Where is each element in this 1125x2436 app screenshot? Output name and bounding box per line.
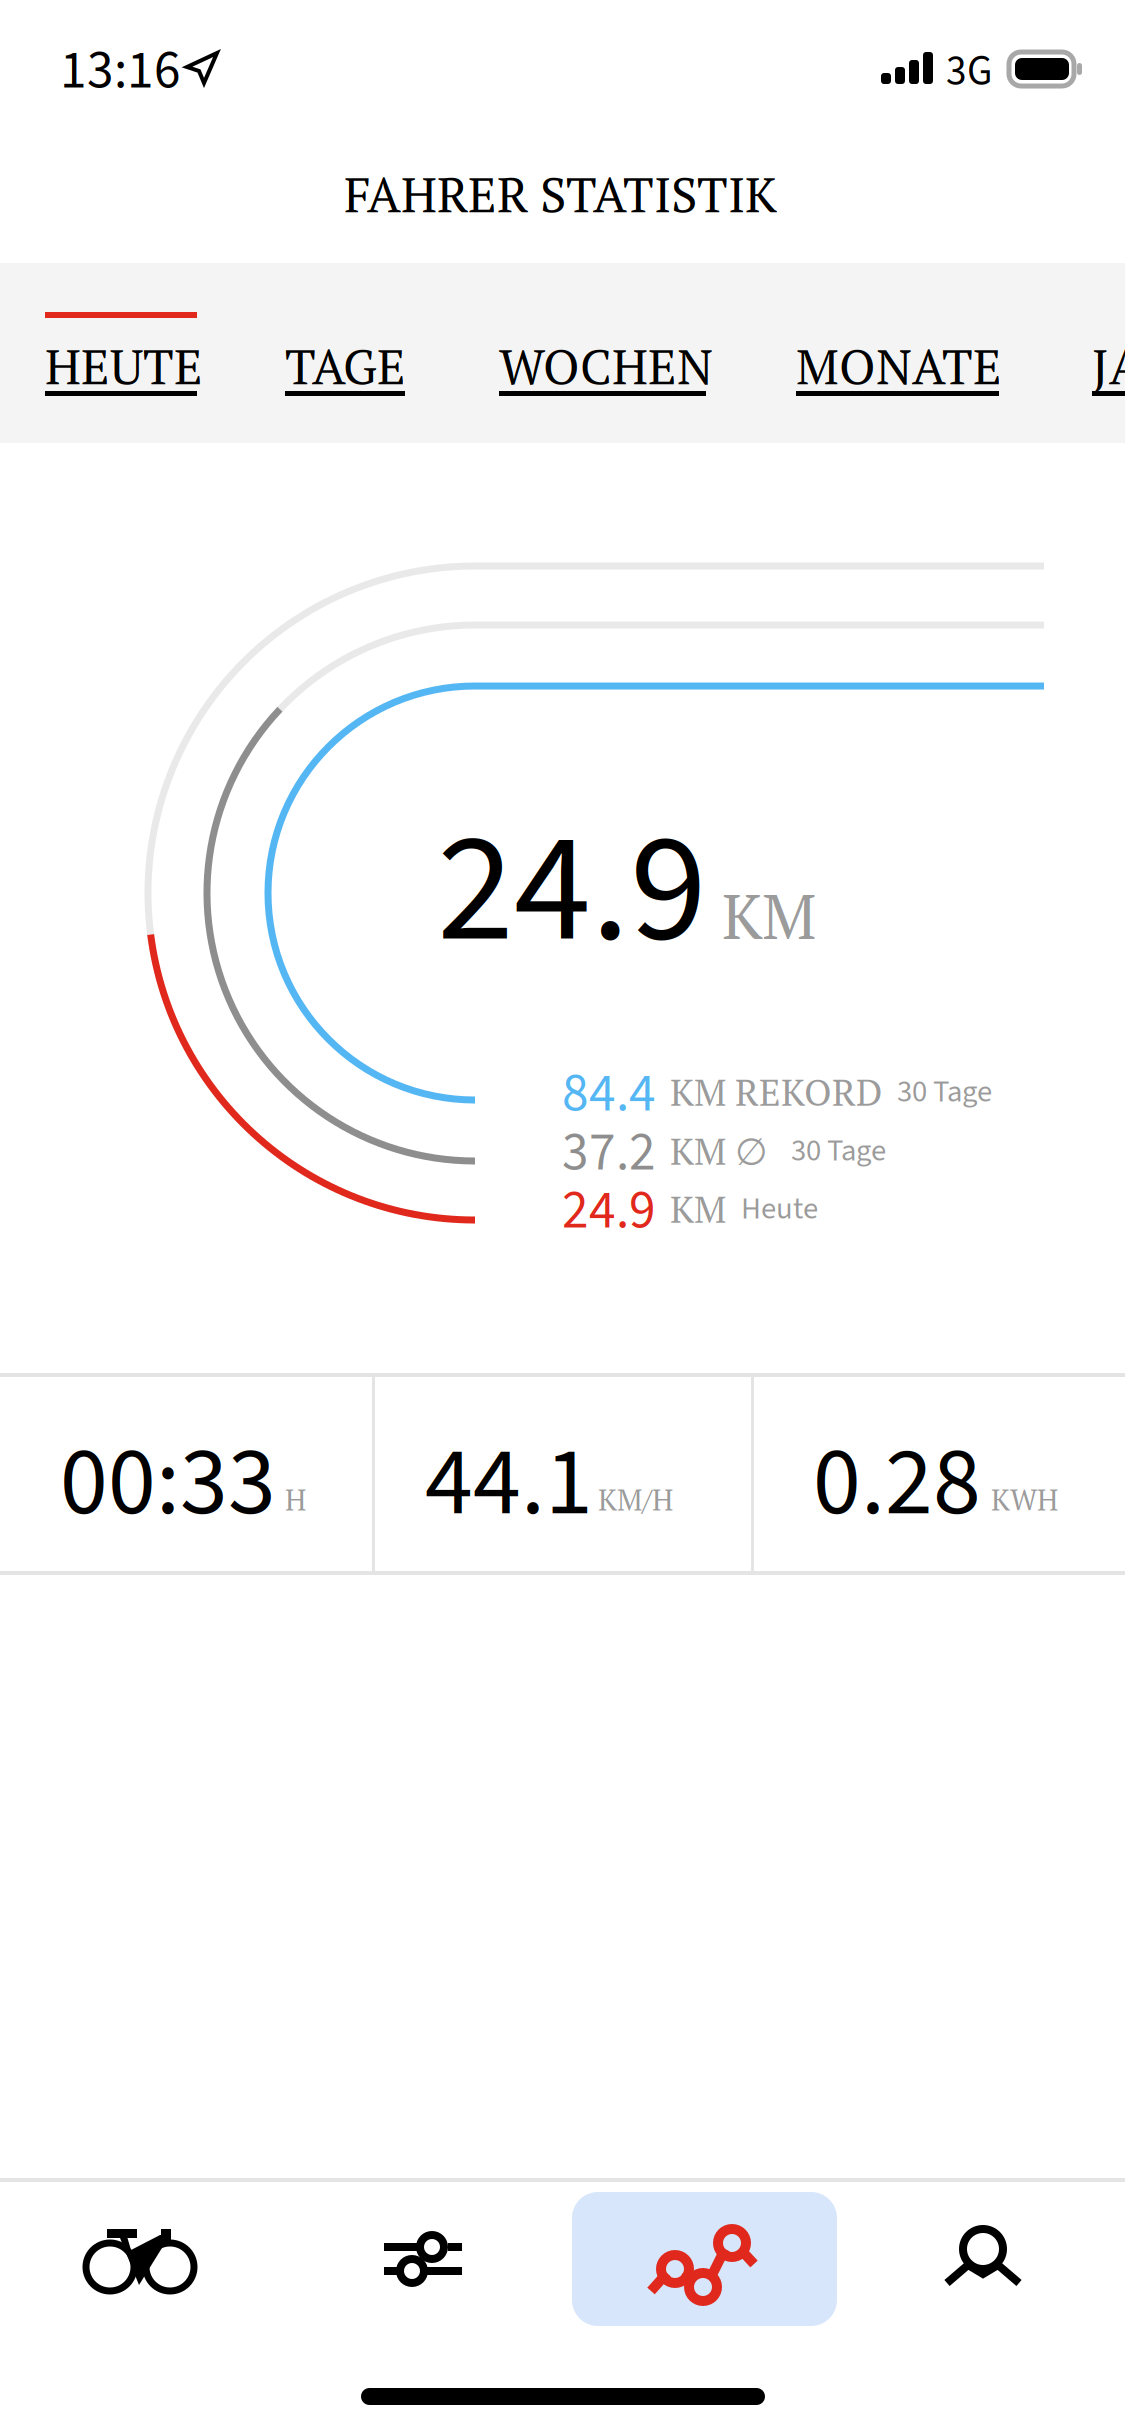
button[interactable]: WOCHEN: [499, 263, 706, 443]
button[interactable]: HEUTE: [45, 263, 197, 443]
staticText: KM: [670, 1184, 726, 1233]
staticText: 30 Tage: [897, 1070, 992, 1114]
staticText: 37.2: [562, 1115, 656, 1191]
staticText: KM REKORD: [670, 1067, 882, 1116]
staticText: KM ∅: [670, 1126, 768, 1175]
button[interactable]: MONATE: [796, 263, 999, 443]
staticText: KM/H: [598, 1480, 673, 1519]
staticText: JA: [1092, 333, 1125, 398]
staticText: MONATE: [796, 333, 1002, 398]
button[interactable]: Statistics: [647, 2229, 759, 2295]
staticText: 24.9: [437, 780, 707, 1000]
button[interactable]: JA: [1092, 263, 1125, 443]
staticText: WOCHEN: [499, 333, 713, 398]
staticText: 0.28: [813, 1415, 981, 1552]
staticText: 00:33: [60, 1415, 276, 1552]
button[interactable]: Settings: [384, 2232, 462, 2286]
staticText: H: [285, 1480, 306, 1519]
staticText: Heute: [741, 1187, 818, 1231]
staticText: 84.4: [562, 1056, 656, 1132]
staticText: KM: [722, 874, 816, 957]
button[interactable]: TAGE: [285, 263, 405, 443]
staticText: KWH: [991, 1480, 1058, 1519]
button[interactable]: Profile: [943, 2229, 1023, 2287]
staticText: 13:16: [60, 33, 181, 109]
staticText: HEUTE: [45, 333, 203, 398]
staticText: 3G: [946, 42, 993, 101]
staticText: 24.9: [562, 1173, 656, 1249]
staticText: TAGE: [285, 333, 406, 398]
button[interactable]: Rides: [86, 2229, 194, 2291]
staticText: FAHRER STATISTIK: [344, 161, 777, 226]
staticText: 44.1: [425, 1415, 593, 1552]
staticText: 30 Tage: [791, 1129, 886, 1173]
